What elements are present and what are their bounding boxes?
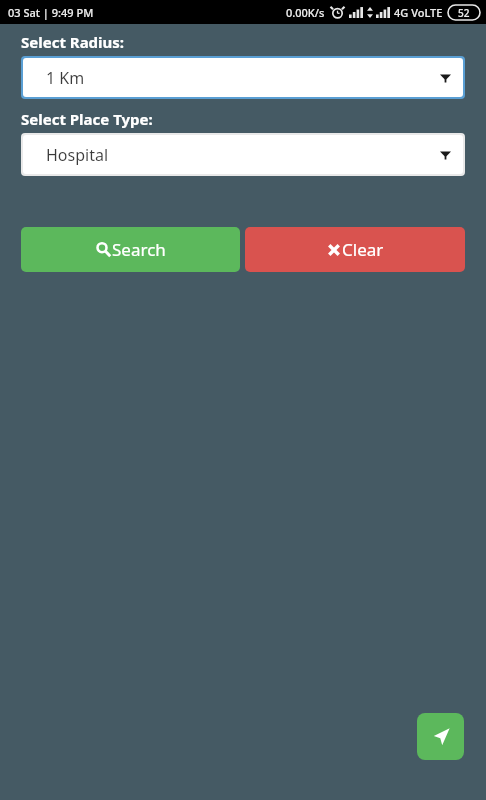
staticText: 03 Sat | 9:49 PM: [8, 5, 94, 20]
staticText: 52: [458, 6, 470, 20]
staticText: 0.00K/s: [286, 5, 325, 20]
staticText: Hospital: [46, 144, 109, 166]
staticText: 1 Km: [46, 67, 85, 89]
staticText: Clear: [342, 238, 384, 261]
staticText: Select Radius:: [21, 32, 125, 52]
button[interactable]: 1 Km: [23, 58, 463, 97]
button[interactable]: My location: [417, 713, 464, 760]
staticText: 4G VoLTE: [394, 5, 443, 20]
staticText: Select Place Type:: [21, 109, 153, 129]
button[interactable]: Search: [21, 227, 240, 272]
staticText: Search: [112, 238, 166, 261]
button[interactable]: Clear: [245, 227, 465, 272]
button[interactable]: Hospital: [23, 135, 463, 174]
